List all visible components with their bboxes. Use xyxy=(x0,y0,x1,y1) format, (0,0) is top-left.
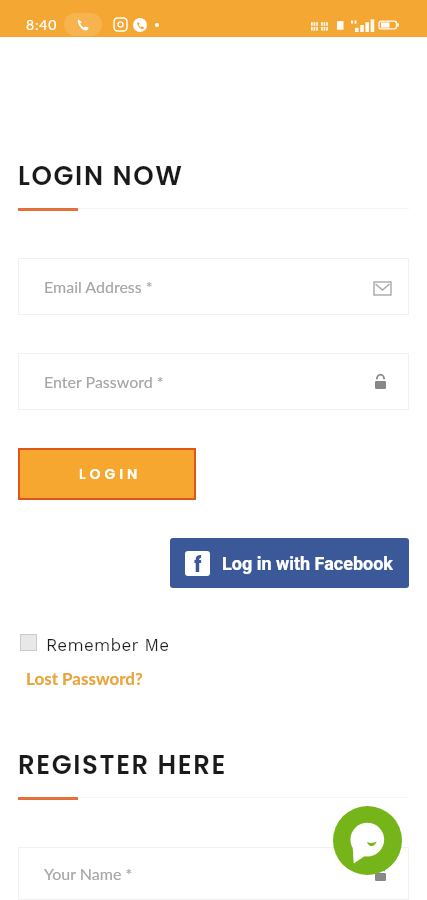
staticText: LOGIN NOW xyxy=(18,158,184,194)
staticText: LOGIN xyxy=(79,464,142,484)
staticText: 8:40 xyxy=(26,16,58,33)
staticText: Log in with Facebook xyxy=(222,553,393,574)
staticText: f xyxy=(194,551,202,575)
button[interactable]: Enter Password * xyxy=(18,353,409,410)
staticText: Email Address * xyxy=(44,277,153,296)
button[interactable]: f xyxy=(170,538,409,588)
button[interactable]: Remember Me xyxy=(20,632,170,652)
staticText: Your Name * xyxy=(44,864,133,883)
staticText: Remember Me xyxy=(46,635,170,655)
button[interactable]: Open chat xyxy=(333,806,402,875)
staticText: REGISTER HERE xyxy=(18,747,227,783)
button[interactable]: Lost Password? xyxy=(26,668,143,688)
staticText: Enter Password * xyxy=(44,372,164,391)
button[interactable]: Email Address * xyxy=(18,258,409,315)
button[interactable]: Your Name * xyxy=(18,847,409,900)
button[interactable]: LOGIN xyxy=(20,450,194,498)
